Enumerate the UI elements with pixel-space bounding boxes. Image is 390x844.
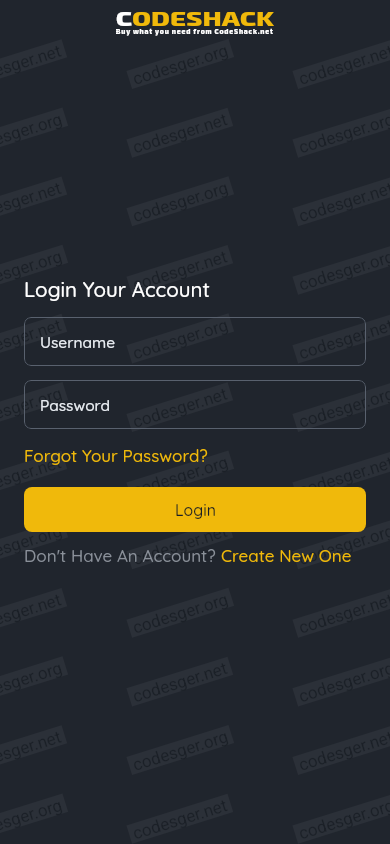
- button[interactable]: Password: [24, 380, 366, 429]
- staticText: Buy what you need from CodeShack.net: [116, 27, 274, 35]
- staticText: Don't Have An Account?: [24, 545, 221, 566]
- staticText: Create New One: [221, 545, 352, 566]
- button[interactable]: Username: [24, 317, 366, 366]
- staticText: Username: [40, 332, 116, 351]
- button[interactable]: Forgot Your Password?: [24, 445, 208, 466]
- staticText: Login: [175, 500, 216, 520]
- button[interactable]: Login: [24, 487, 366, 532]
- staticText: Password: [40, 395, 111, 414]
- staticText: Login Your Account: [24, 276, 210, 302]
- staticText: Forgot Your Password?: [24, 445, 208, 466]
- button[interactable]: Create New One: [221, 545, 352, 566]
- staticText: CODESHACK: [116, 7, 274, 30]
